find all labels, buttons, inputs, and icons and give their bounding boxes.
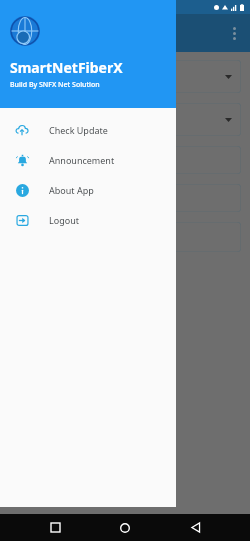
button[interactable]: More options [222, 21, 246, 45]
button[interactable]: Announcement [0, 145, 176, 175]
button[interactable]: Recent apps [40, 514, 70, 541]
button[interactable]: Home [110, 514, 140, 541]
button[interactable] [9, 222, 241, 252]
staticText: Check Update [49, 124, 108, 136]
button[interactable] [9, 184, 241, 212]
staticText: Announcement [49, 154, 115, 166]
button[interactable] [6, 202, 46, 216]
button[interactable]: Check Update [0, 115, 176, 145]
button[interactable]: Back [180, 514, 210, 541]
button[interactable]: Logout [0, 205, 176, 235]
button[interactable] [9, 146, 241, 174]
staticText: About App [49, 184, 94, 196]
button[interactable]: About App [0, 175, 176, 205]
staticText: Build By SNFX Net Solution [10, 80, 100, 90]
staticText: Logout [49, 214, 79, 226]
button[interactable]: Select ISP first! [9, 103, 241, 136]
button[interactable] [9, 60, 241, 93]
staticText: SmartNetFiberX [10, 58, 123, 77]
